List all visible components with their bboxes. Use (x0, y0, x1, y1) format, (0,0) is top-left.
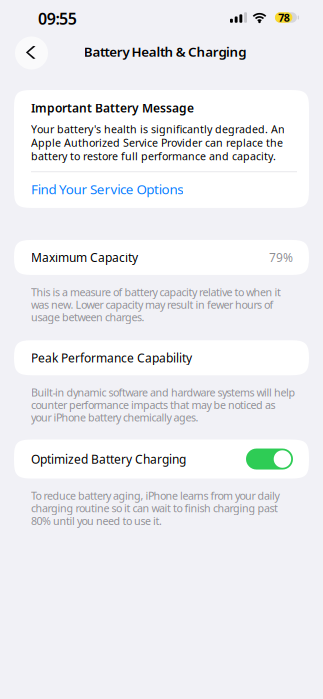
staticText: Important Battery Message (31, 100, 194, 116)
staticText: Peak Performance Capability (31, 350, 192, 366)
staticText: Find Your Service Options (31, 180, 183, 198)
staticText: Maximum Capacity (31, 249, 138, 265)
button[interactable]: Find Your Service Options (31, 180, 297, 198)
staticText: This is a measure of battery capacity re… (31, 285, 281, 324)
button[interactable]: Peak Performance Capability (0, 340, 323, 375)
button[interactable]: Optimized Battery Charging (0, 439, 323, 478)
button[interactable]: Maximum Capacity (0, 240, 323, 275)
staticText: 79% (269, 249, 293, 265)
staticText: 09:55 (38, 8, 77, 29)
staticText: Optimized Battery Charging (31, 451, 186, 467)
staticText: To reduce battery aging, iPhone learns f… (31, 488, 279, 528)
staticText: Built-in dynamic software and hardware s… (31, 385, 295, 424)
button[interactable]: Back (15, 36, 48, 69)
staticText: Battery Health & Charging (84, 43, 246, 60)
staticText: 78 (278, 10, 290, 25)
staticText: Your battery's health is significantly d… (31, 122, 285, 163)
